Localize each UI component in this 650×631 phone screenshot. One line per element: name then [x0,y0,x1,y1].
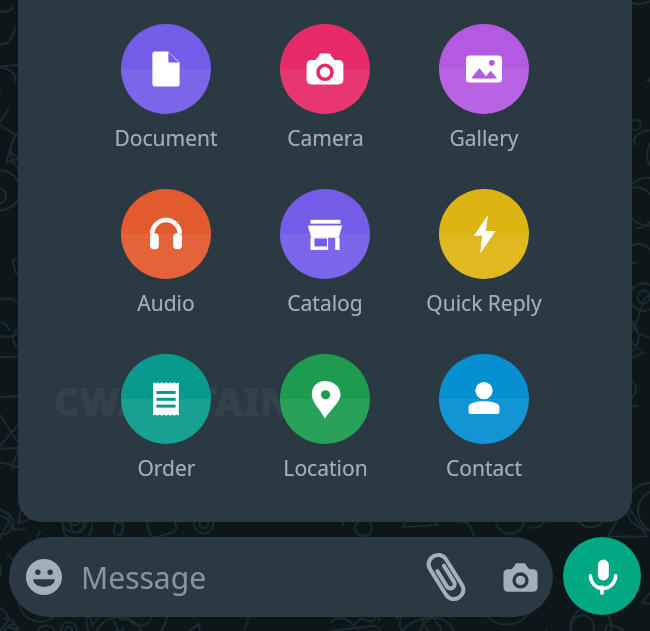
button[interactable]: Emoji [18,551,70,603]
staticText: Camera [287,124,364,153]
button[interactable]: Contact [410,348,558,483]
button[interactable]: Record voice message [563,537,641,615]
button[interactable]: Quick Reply [410,183,558,318]
button[interactable]: Location [251,348,399,483]
staticText: Contact [446,454,522,483]
button[interactable]: Catalog [251,183,399,318]
staticText: Message [81,557,207,598]
staticText: Audio [137,289,195,318]
button[interactable]: Audio [92,183,240,318]
staticText: Location [283,454,368,483]
staticText: Order [137,454,196,483]
button[interactable]: Document [92,18,240,153]
staticText: CWABETAINFO [54,374,345,427]
button[interactable]: Gallery [410,18,558,153]
staticText: Catalog [287,289,363,318]
button[interactable]: Camera [493,550,547,604]
staticText: Quick Reply [426,289,542,318]
staticText: Document [114,124,218,153]
button[interactable]: Camera [251,18,399,153]
button[interactable]: Order [92,348,240,483]
staticText: Gallery [449,124,519,153]
button[interactable]: Attach [419,550,473,604]
